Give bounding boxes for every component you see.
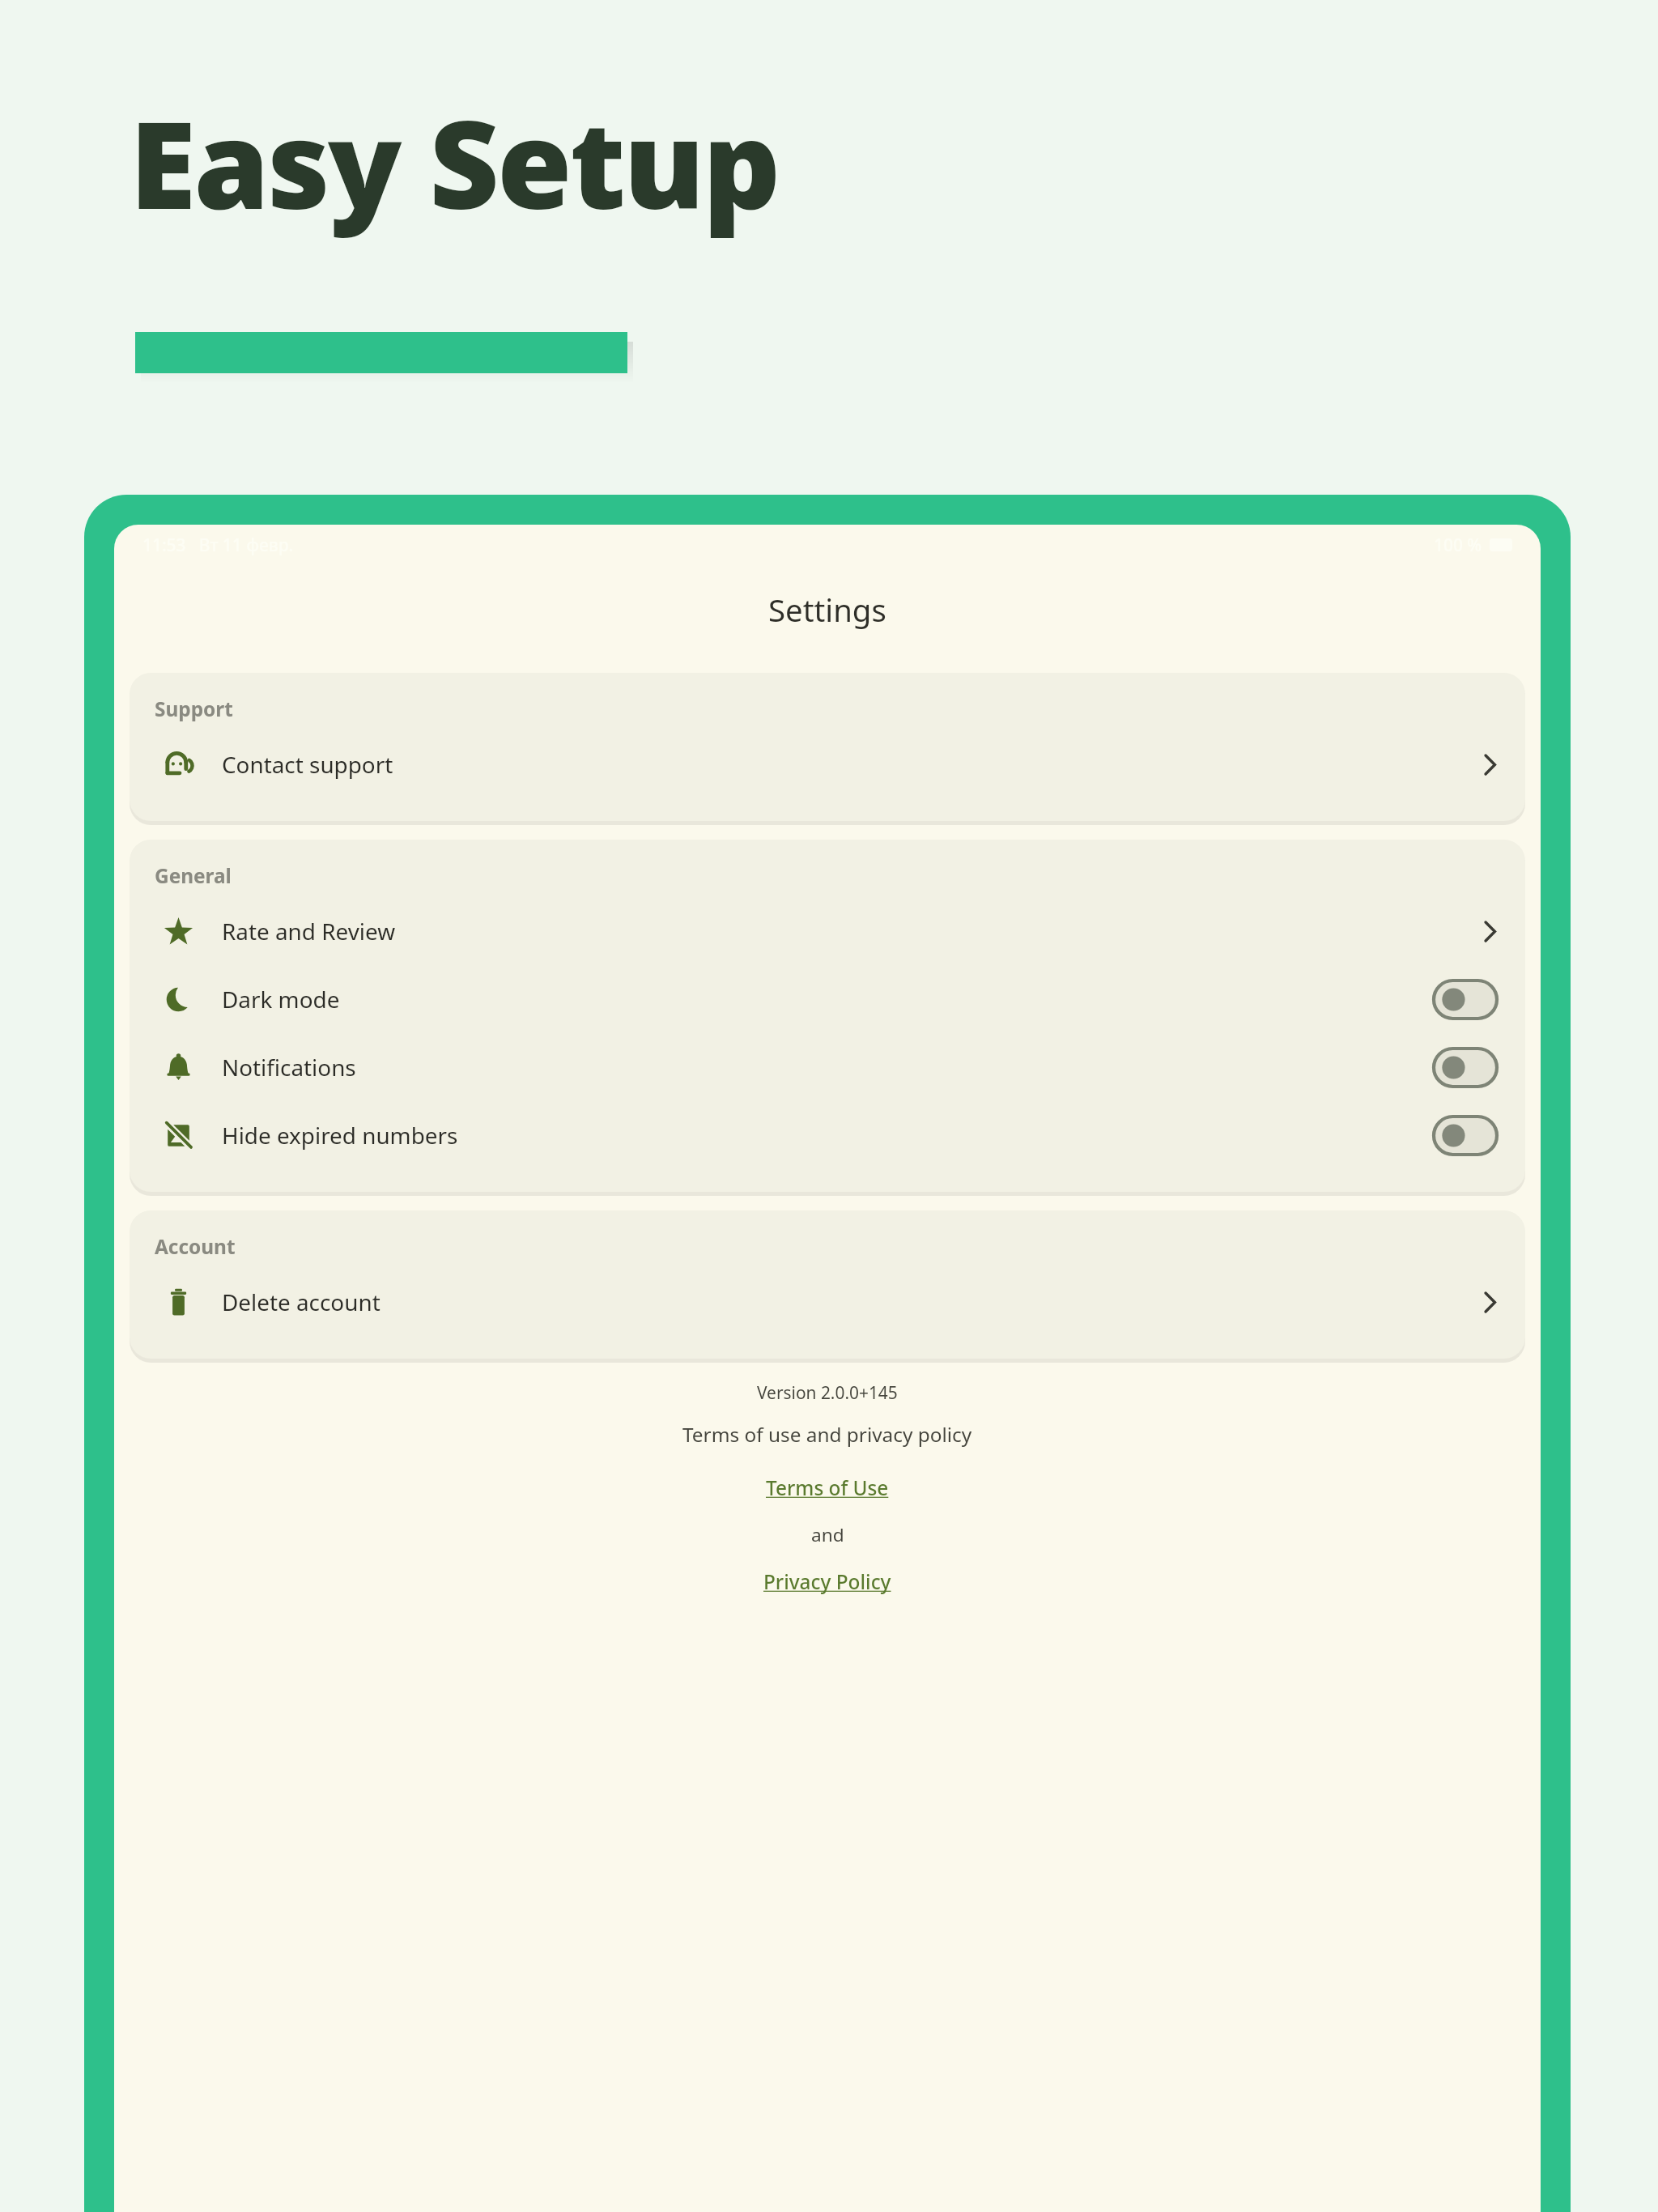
- button[interactable]: Notifications toggle: [1434, 1049, 1497, 1087]
- staticText: Rate and Review: [222, 916, 396, 946]
- staticText: and: [811, 1522, 844, 1547]
- staticText: Contact support: [222, 749, 393, 780]
- staticText: Notifications: [222, 1052, 356, 1083]
- button[interactable]: Terms of Use: [755, 1472, 900, 1504]
- button[interactable]: Dark mode toggle: [1434, 981, 1497, 1019]
- button[interactable]: Rate and Review: [130, 897, 1525, 965]
- button[interactable]: Privacy Policy: [752, 1566, 903, 1597]
- staticText: Dark mode: [222, 984, 340, 1015]
- button[interactable]: Hide expired numbers: [130, 1101, 1525, 1169]
- staticText: General: [155, 862, 232, 889]
- button[interactable]: Delete account: [130, 1268, 1525, 1336]
- staticText: Easy Setup: [130, 79, 779, 245]
- button[interactable]: Hide expired numbers toggle: [1434, 1117, 1497, 1155]
- staticText: Version 2.0.0+145: [757, 1381, 898, 1404]
- button[interactable]: Notifications: [130, 1033, 1525, 1101]
- button[interactable]: Dark mode: [130, 965, 1525, 1033]
- staticText: Support: [155, 696, 233, 722]
- staticText: Terms of use and privacy policy: [682, 1421, 972, 1448]
- staticText: Account: [155, 1233, 236, 1260]
- staticText: Hide expired numbers: [222, 1120, 458, 1151]
- staticText: Privacy Policy: [763, 1568, 891, 1595]
- staticText: Delete account: [222, 1287, 380, 1317]
- staticText: Settings: [768, 589, 886, 631]
- staticText: Terms of Use: [766, 1474, 889, 1501]
- staticText: 100 %: [1434, 534, 1482, 556]
- button[interactable]: Contact support: [130, 730, 1525, 798]
